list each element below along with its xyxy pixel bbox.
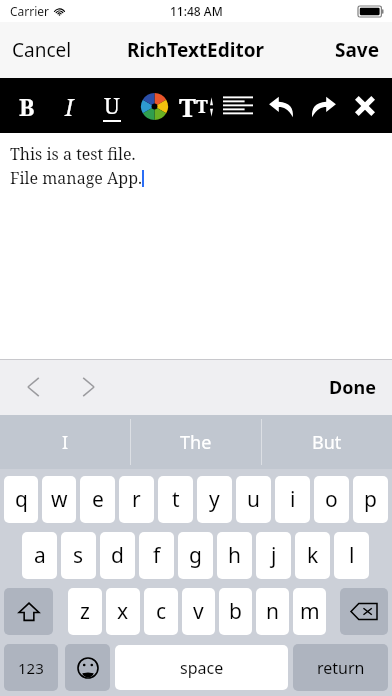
staticText: The [180, 430, 212, 455]
staticText: u [247, 485, 260, 514]
staticText: d [111, 541, 124, 570]
staticText: r [132, 485, 141, 514]
staticText: RichTextEditor [127, 37, 265, 63]
button[interactable]: s [61, 532, 96, 579]
staticText: f [153, 541, 161, 570]
button[interactable]: r [119, 476, 154, 523]
staticText: z [80, 597, 90, 626]
staticText: e [92, 485, 104, 514]
staticText: Done [329, 375, 376, 400]
staticText: o [325, 485, 338, 514]
staticText: y [209, 485, 220, 514]
button[interactable]: Cancel [0, 27, 84, 73]
staticText: T [179, 89, 196, 124]
button[interactable]: Close [348, 83, 382, 129]
button[interactable]: Underline [95, 83, 129, 129]
staticText: b [229, 597, 242, 626]
button[interactable]: d [100, 532, 135, 579]
button[interactable]: Shift [4, 588, 53, 635]
staticText: k [307, 541, 319, 570]
staticText: File manage App. [10, 167, 142, 189]
staticText: x [117, 597, 129, 626]
button[interactable]: Numbers [4, 644, 58, 691]
button[interactable]: o [314, 476, 349, 523]
button[interactable]: Emoji [65, 644, 110, 691]
button[interactable]: c [144, 588, 178, 635]
staticText: Cancel [12, 37, 72, 63]
staticText: But [312, 430, 342, 455]
button[interactable]: Italic [52, 83, 86, 129]
button[interactable]: Save [323, 27, 392, 73]
button[interactable]: I [0, 415, 130, 469]
button[interactable]: a [22, 532, 57, 579]
button[interactable]: n [256, 588, 289, 635]
button[interactable]: Next field [68, 367, 108, 407]
staticText: i [290, 485, 296, 514]
staticText: h [228, 541, 241, 570]
button[interactable]: h [217, 532, 252, 579]
staticText: This is a test file. [10, 143, 136, 165]
button[interactable]: Previous field [14, 367, 54, 407]
staticText: t [172, 485, 180, 514]
staticText: s [73, 541, 84, 570]
staticText: c [156, 597, 167, 626]
button[interactable]: Align [221, 83, 255, 129]
staticText: 123 [18, 658, 44, 678]
button[interactable]: l [334, 532, 369, 579]
button[interactable]: b [219, 588, 252, 635]
staticText: n [266, 597, 279, 626]
button[interactable]: The [131, 415, 261, 469]
button[interactable]: k [295, 532, 330, 579]
button[interactable]: q [4, 476, 38, 523]
button[interactable]: w [42, 476, 76, 523]
button[interactable]: u [236, 476, 271, 523]
button[interactable]: Backspace [340, 588, 388, 635]
button[interactable]: e [80, 476, 115, 523]
staticText: T [196, 94, 208, 119]
staticText: g [189, 541, 202, 570]
button[interactable]: g [178, 532, 213, 579]
staticText: 11:48 AM [170, 3, 223, 19]
staticText: return [317, 657, 365, 679]
staticText: U [104, 90, 120, 120]
staticText: B [19, 91, 35, 122]
button[interactable]: Bold [10, 83, 44, 129]
button[interactable]: Undo [264, 83, 298, 129]
staticText: m [300, 597, 320, 626]
button[interactable]: Text color [137, 83, 171, 129]
button[interactable]: space [115, 645, 288, 690]
staticText: space [180, 657, 224, 679]
button[interactable]: f [139, 532, 174, 579]
button[interactable]: Done [313, 363, 392, 412]
staticText: j [271, 541, 277, 570]
staticText: l [349, 541, 355, 570]
button[interactable]: But [262, 415, 392, 469]
staticText: v [193, 597, 204, 626]
button[interactable]: y [197, 476, 232, 523]
button[interactable]: Font size [179, 83, 213, 129]
staticText: p [364, 485, 377, 514]
button[interactable]: j [256, 532, 291, 579]
staticText: a [34, 541, 46, 570]
staticText: I [62, 430, 69, 455]
staticText: q [15, 485, 28, 514]
staticText: I [65, 91, 74, 122]
staticText: Carrier [10, 3, 50, 19]
button[interactable]: Redo [306, 83, 340, 129]
button[interactable]: m [293, 588, 326, 635]
button[interactable]: Return [293, 644, 388, 691]
staticText: w [51, 485, 68, 514]
staticText: Save [335, 37, 380, 63]
button[interactable]: This is a test file. [0, 133, 392, 359]
button[interactable]: p [353, 476, 388, 523]
button[interactable]: i [275, 476, 310, 523]
button[interactable]: t [158, 476, 193, 523]
button[interactable]: x [106, 588, 140, 635]
button[interactable]: z [68, 588, 102, 635]
button[interactable]: v [182, 588, 215, 635]
